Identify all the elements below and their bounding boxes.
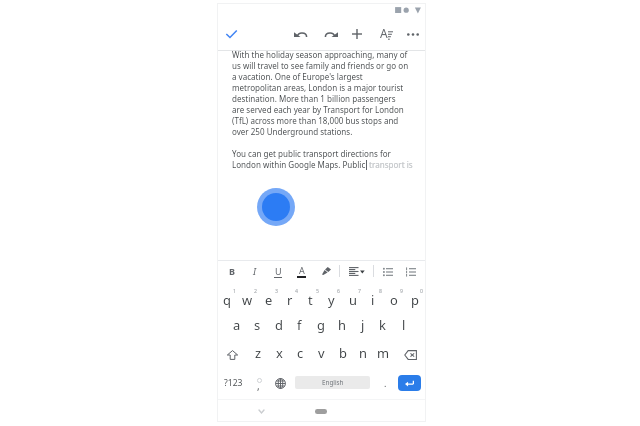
staticText: w [242,291,253,309]
button[interactable]: Backspace [398,344,422,366]
staticText: 8 [379,287,382,294]
staticText: A [380,25,388,41]
button[interactable]: Comma [249,372,267,394]
staticText: j [361,316,365,334]
staticText: B [229,265,235,277]
staticText: e [265,291,273,309]
staticText: London within Google Maps. Public [232,159,366,170]
staticText: 9 [400,287,403,294]
button[interactable]: y [321,289,342,311]
button[interactable]: u [342,289,363,311]
staticText: You can get public transport directions … [232,148,391,159]
button[interactable]: m [373,342,394,364]
button[interactable]: v [311,342,332,364]
staticText: i [371,291,375,309]
button[interactable]: n [352,342,373,364]
button[interactable]: English [295,376,370,389]
staticText: English [322,378,344,387]
button[interactable]: t [300,289,321,311]
button[interactable]: Highlight colour [316,261,336,281]
button[interactable]: o [383,289,404,311]
button[interactable]: d [268,314,289,336]
button[interactable]: Redo [319,22,343,46]
button[interactable]: Bold [222,261,242,281]
button[interactable]: Shift [222,344,243,366]
staticText: A [299,264,305,276]
staticText: ?123 [224,377,243,389]
button[interactable]: a [226,314,247,336]
button[interactable]: i [362,289,383,311]
button[interactable]: q [216,289,237,311]
staticText: 6 [337,287,340,294]
button[interactable]: b [332,342,353,364]
button[interactable]: j [352,314,373,336]
staticText: m [377,344,390,362]
button[interactable]: w [237,289,258,311]
staticText: (TfL) across more than 18,000 bus stops … [232,115,399,126]
staticText: over 250 Underground stations. [232,126,353,137]
button[interactable]: Done [219,22,243,46]
button[interactable]: Formatting [374,21,398,45]
button[interactable]: f [289,314,310,336]
staticText: us will travel to see family and friends… [232,60,409,71]
button[interactable]: Insert [345,22,369,46]
button[interactable]: Bulleted list [378,262,398,282]
staticText: destination. More than 1 billion passeng… [232,93,396,104]
staticText: d [275,316,283,334]
button[interactable]: k [372,314,393,336]
staticText: o [390,291,398,309]
staticText: I [253,265,257,278]
button[interactable]: c [290,342,311,364]
staticText: l [402,316,406,334]
staticText: s [254,316,261,334]
button[interactable]: h [331,314,352,336]
button[interactable]: Undo [288,22,312,46]
staticText: x [276,344,283,362]
staticText: , [257,379,260,393]
staticText: 1 [233,287,236,294]
staticText: h [338,316,346,334]
button[interactable]: Numbered list [401,262,421,282]
button[interactable]: l [393,314,414,336]
staticText: y [328,291,335,309]
staticText: a vacation. One of Europe's largest [232,71,363,82]
staticText: p [411,291,419,309]
button[interactable]: e [258,289,279,311]
button[interactable]: Hide keyboard [251,401,271,421]
button[interactable]: r [279,289,300,311]
staticText: metropolitan areas, London is a major to… [232,82,404,93]
staticText: U [275,265,282,277]
staticText: t [308,291,313,309]
staticText: 2 [254,287,257,294]
staticText: transport is [367,159,413,170]
staticText: 5 [316,287,319,294]
staticText: u [349,291,357,309]
staticText: v [318,344,325,362]
button[interactable]: Underline [268,261,288,281]
button[interactable]: Change language [271,372,289,394]
staticText: a [233,316,241,334]
button[interactable]: ?123 [219,372,247,394]
staticText: are served each year by Transport for Lo… [232,104,404,115]
button[interactable]: Italic [245,261,265,281]
staticText: f [297,316,302,334]
button[interactable]: Alignment [347,261,367,281]
button[interactable]: Enter [398,375,421,391]
button[interactable]: Text colour [291,261,311,281]
staticText: g [317,316,325,334]
staticText: 0 [420,287,423,294]
staticText: 7 [358,287,361,294]
staticText: n [359,344,367,362]
staticText: b [339,344,347,362]
button[interactable]: s [247,314,268,336]
staticText: c [297,344,304,362]
button[interactable]: x [269,342,290,364]
button[interactable]: p [404,289,425,311]
button[interactable]: z [248,342,269,364]
button[interactable]: g [310,314,331,336]
staticText: k [379,316,386,334]
button[interactable]: Period [377,372,393,394]
button[interactable]: More options [401,22,425,46]
staticText: 4 [295,287,298,294]
staticText: q [223,291,231,309]
